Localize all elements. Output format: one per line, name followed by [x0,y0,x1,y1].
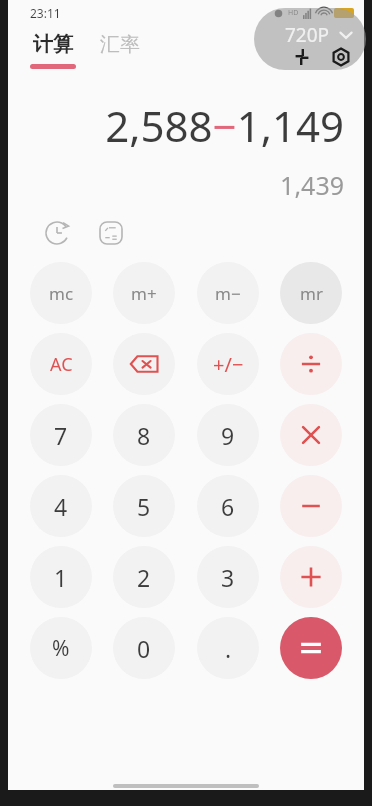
staticText: mr [300,282,323,305]
button[interactable]: 9 [197,404,259,466]
staticText: . [225,633,232,664]
button[interactable]: +/− [197,333,259,395]
other: Expand [338,27,354,43]
button[interactable]: AC [30,333,92,395]
staticText: +/− [213,351,244,378]
button[interactable]: 4 [30,475,92,537]
button[interactable]: Record [332,48,350,66]
staticText: 2 [137,562,151,593]
button[interactable]: 3 [197,546,259,608]
button[interactable]: 1 [30,546,92,608]
button[interactable]: 2 [113,546,175,608]
staticText: 23:11 [30,5,61,21]
button[interactable]: . [197,617,259,679]
staticText: HD [288,8,299,18]
staticText: 720P [285,22,330,48]
button[interactable]: 5 [113,475,175,537]
button[interactable]: × [280,404,342,466]
button[interactable]: Scientific mode [98,220,124,246]
button[interactable]: − [280,475,342,537]
button[interactable]: 0 [113,617,175,679]
button[interactable]: m− [197,262,259,324]
staticText: 8 [137,420,151,451]
button[interactable]: 8 [113,404,175,466]
button[interactable]: = [280,617,342,679]
staticText: mc [49,282,74,305]
staticText: 4 [54,491,68,522]
button[interactable]: mc [30,262,92,324]
button[interactable]: + [280,546,342,608]
staticText: 5 [137,491,151,522]
button[interactable]: % [30,617,92,679]
staticText: % [52,634,70,663]
button[interactable]: 汇率 [98,32,142,57]
button[interactable]: 6 [197,475,259,537]
staticText: 1 [54,562,68,593]
staticText: 2,588−1,149 [28,97,344,154]
staticText: 9 [221,420,235,451]
staticText: 计算 [33,32,73,57]
staticText: 6 [221,491,235,522]
staticText: 3 [221,562,235,593]
button[interactable]: m+ [113,262,175,324]
button[interactable]: ÷ [280,333,342,395]
staticText: 0 [137,633,151,664]
staticText: m+ [131,282,157,305]
staticText: m− [215,282,241,305]
staticText: AC [50,352,73,377]
button[interactable]: Crop [294,49,310,65]
button[interactable]: 7 [30,404,92,466]
staticText: 汇率 [100,32,140,57]
staticText: 1,439 [28,168,344,202]
button[interactable]: ⌫ [113,333,175,395]
staticText: 7 [54,420,68,451]
button[interactable]: History [44,220,70,246]
button[interactable]: 计算 [31,32,75,57]
button[interactable]: mr [280,262,342,324]
